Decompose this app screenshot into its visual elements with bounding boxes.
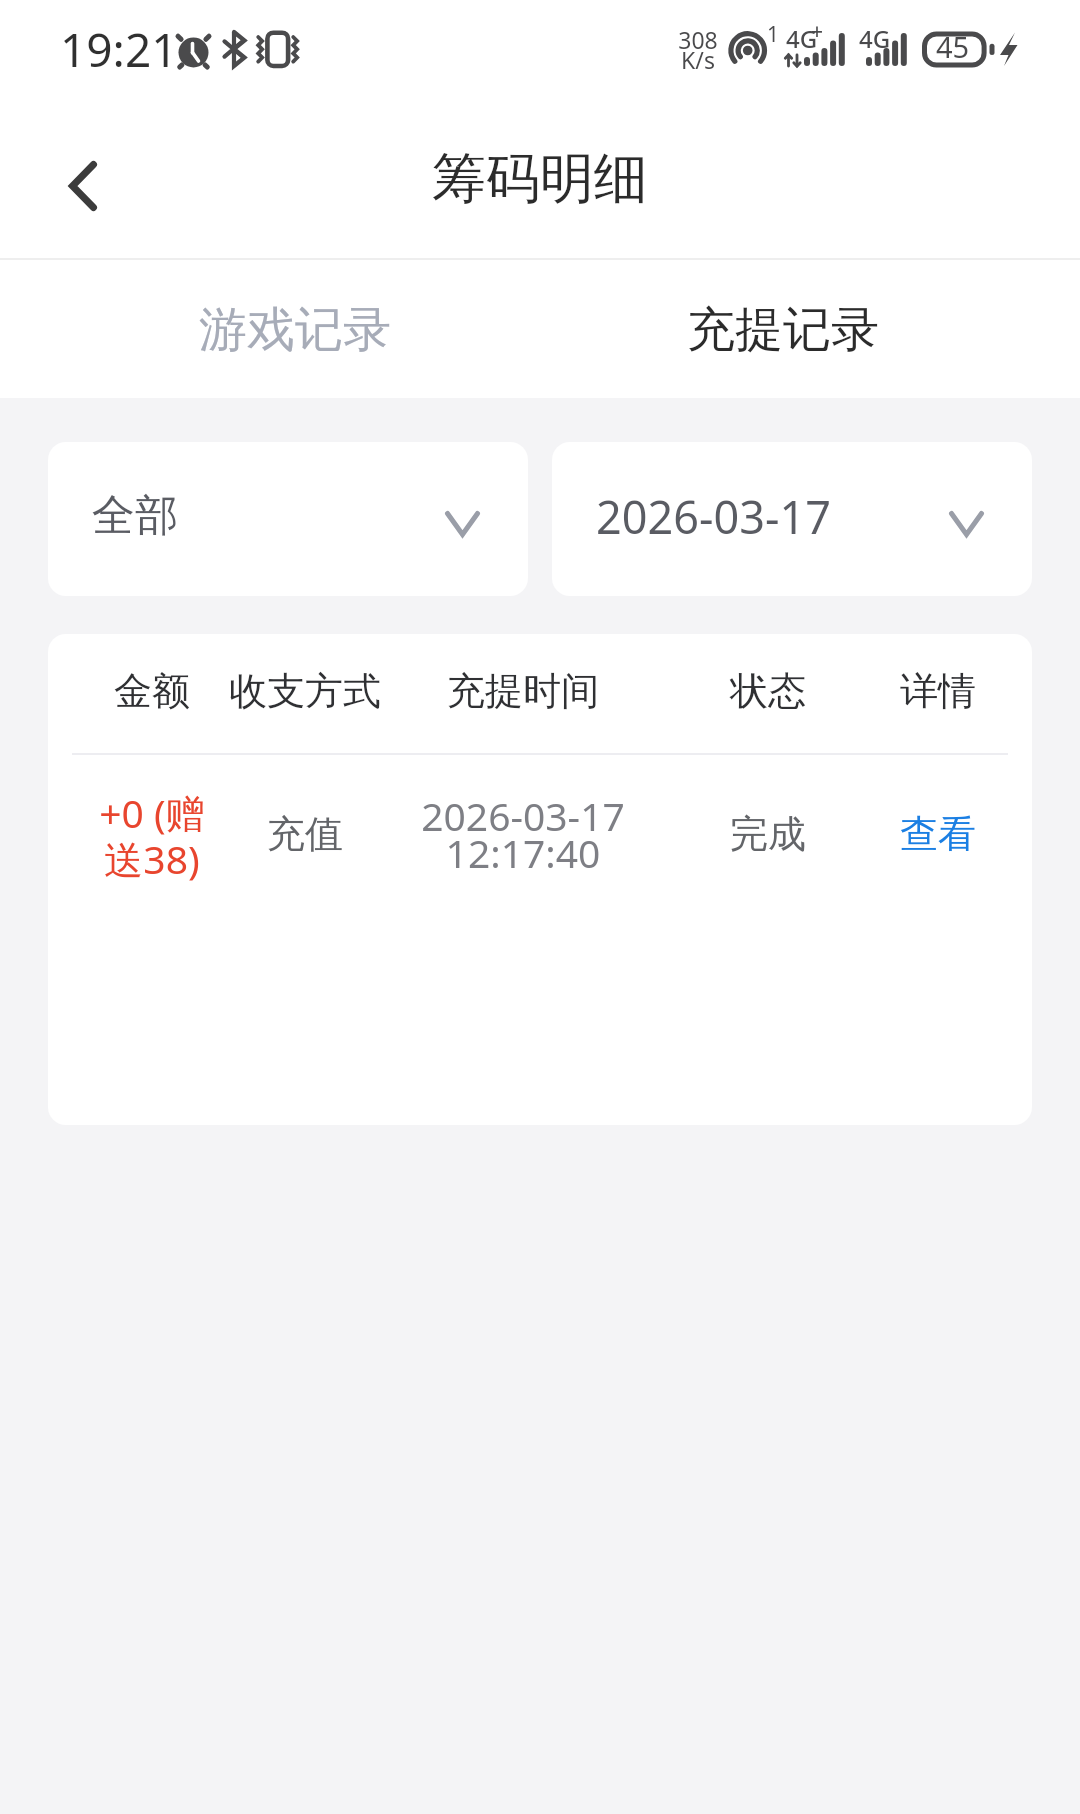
staticText: 完成 [730,810,806,858]
other: Expand [949,511,984,537]
staticText: + [811,17,824,46]
button[interactable]: Back [28,136,138,236]
staticText: 308 K/s [678,24,718,75]
button[interactable] [48,764,1032,904]
staticText: 游戏记录 [199,300,391,360]
staticText: 筹码明细 [432,145,648,213]
staticText: 1 [767,20,780,49]
button[interactable]: 全部 [48,442,528,596]
staticText: 2026-03-17 12:17:40 [421,789,625,879]
staticText: 4G [859,22,891,55]
staticText: 详情 [900,667,976,715]
staticText: 19:21 [60,18,178,81]
button[interactable]: 游戏记录 [175,264,415,395]
staticText: 收支方式 [229,667,381,715]
staticText: 4G [786,22,818,55]
button[interactable]: 查看 [883,798,993,870]
button[interactable]: 充提记录 [663,264,903,395]
staticText: 状态 [730,667,806,715]
staticText: 全部 [92,489,178,543]
button[interactable]: 2026-03-17 [552,442,1032,596]
staticText: 查看 [900,810,976,858]
staticText: +0 (赠 送38) [99,786,205,886]
staticText: 45 [936,27,970,66]
staticText: 2026-03-17 [596,486,831,547]
other: Expand [445,511,480,537]
staticText: 金额 [114,667,190,715]
staticText: 充提时间 [447,667,599,715]
staticText: 充值 [267,810,343,858]
staticText: 充提记录 [687,300,879,360]
